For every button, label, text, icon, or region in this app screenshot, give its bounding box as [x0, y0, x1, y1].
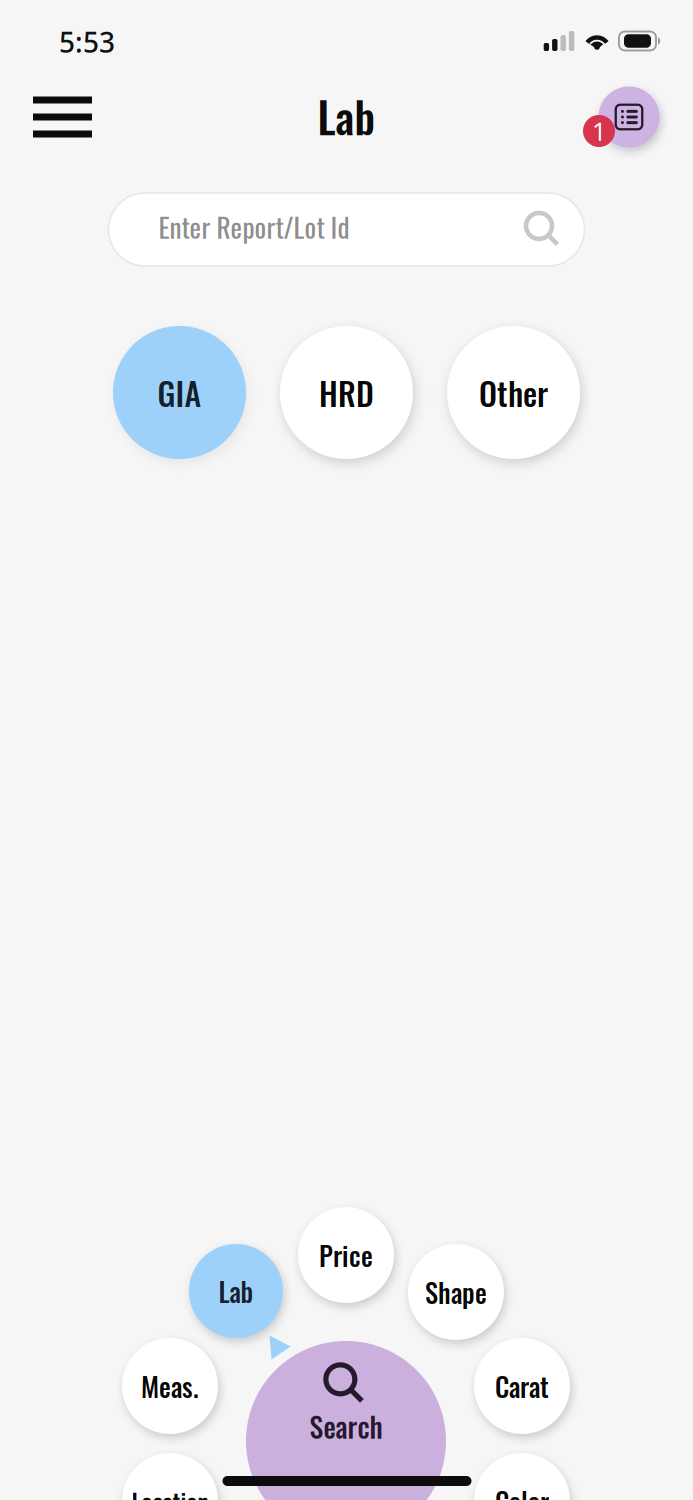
staticText: Shape	[425, 1272, 487, 1312]
button[interactable]: Saved lists, 1 new	[591, 81, 667, 153]
staticText: Color	[495, 1481, 549, 1500]
button[interactable]: Color	[474, 1453, 570, 1500]
staticText: Meas.	[141, 1366, 199, 1406]
staticText: Lab	[218, 1271, 253, 1311]
staticText: HRD	[319, 369, 374, 416]
staticText: Enter Report/Lot Id	[158, 206, 349, 247]
button[interactable]: Enter Report/Lot Id	[108, 193, 584, 266]
button[interactable]: Location	[122, 1453, 218, 1500]
button[interactable]: Shape	[408, 1244, 504, 1340]
staticText: Carat	[495, 1366, 549, 1406]
staticText: Search	[309, 1405, 382, 1447]
staticText: Price	[319, 1235, 373, 1275]
staticText: Lab	[317, 84, 375, 148]
button[interactable]: Search	[246, 1341, 446, 1500]
button[interactable]: Carat	[474, 1338, 570, 1434]
staticText: Location	[131, 1483, 208, 1500]
button[interactable]: Price	[298, 1207, 394, 1303]
staticText: Other	[479, 369, 548, 416]
button[interactable]: Lab	[189, 1244, 283, 1338]
staticText: 1	[592, 114, 606, 148]
button[interactable]: GIA	[113, 326, 246, 459]
button[interactable]: Menu	[24, 87, 101, 146]
staticText: 5:53	[59, 23, 115, 61]
staticText: GIA	[157, 369, 201, 416]
button[interactable]: Meas.	[122, 1338, 218, 1434]
button[interactable]: HRD	[280, 326, 413, 459]
button[interactable]: Other	[447, 326, 580, 459]
